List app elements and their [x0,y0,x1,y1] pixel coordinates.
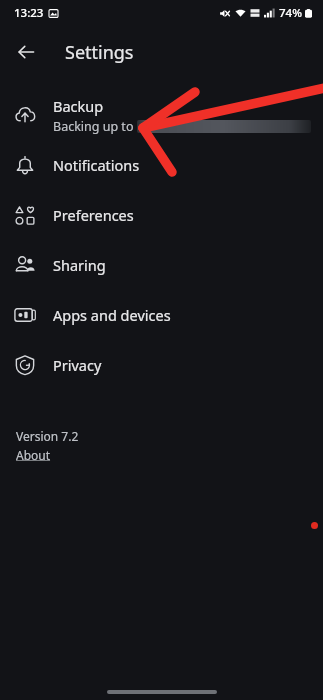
staticText: Apps and devices [53,305,171,325]
staticText: Preferences [53,205,134,225]
staticText: Privacy [53,355,102,375]
button[interactable]: Sharing [0,240,323,290]
staticText: Settings [65,40,134,65]
button[interactable]: Preferences [0,190,323,240]
button[interactable]: Backup [0,90,323,140]
staticText: 13:23 [14,5,44,21]
staticText: About [16,447,51,463]
staticText: Version 7.2 [16,428,79,444]
button[interactable]: Back [12,38,40,66]
staticText: Notifications [53,155,140,175]
button[interactable]: Privacy [0,340,323,390]
staticText: Backup [53,96,104,116]
button[interactable]: Notifications [0,140,323,190]
staticText: 74% [279,5,302,21]
staticText: Sharing [53,255,106,275]
button[interactable]: Apps and devices [0,290,323,340]
staticText: Backing up to [53,118,134,135]
button[interactable]: About [16,447,51,463]
